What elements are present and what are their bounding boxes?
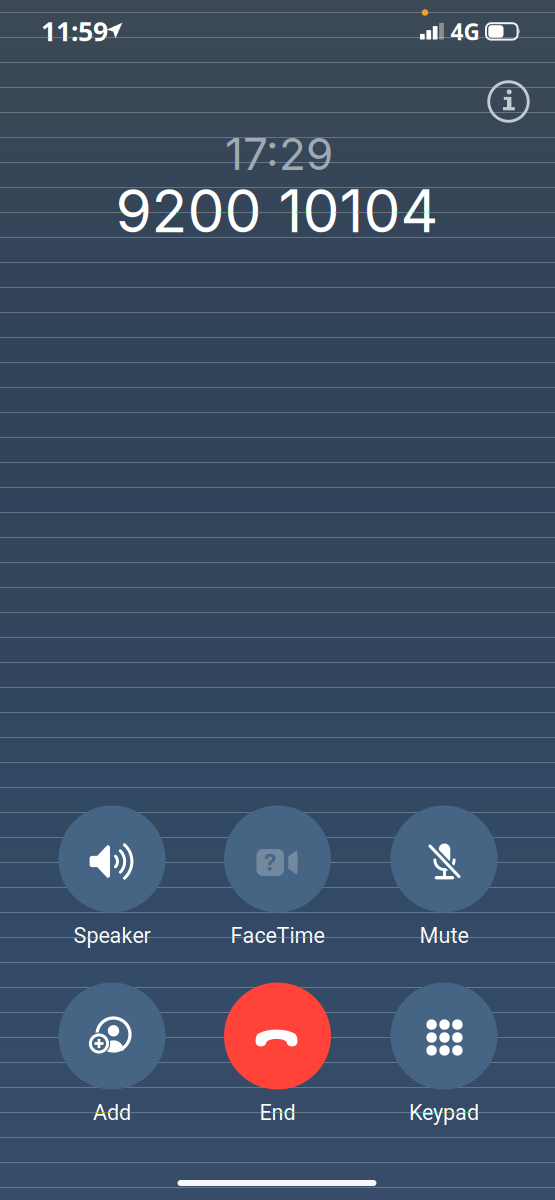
button[interactable]: Call info (481, 74, 535, 128)
staticText: Mute (419, 923, 468, 948)
button[interactable]: Speaker (29, 805, 195, 948)
staticText: Speaker (73, 923, 150, 948)
staticText: End (259, 1100, 295, 1125)
staticText: 17:29 (225, 127, 333, 181)
staticText: FaceTime (230, 923, 324, 948)
staticText: Keypad (409, 1100, 479, 1125)
staticText: Add (93, 1100, 131, 1125)
button[interactable]: End (194, 982, 360, 1125)
button[interactable]: Add (29, 982, 195, 1125)
staticText: ? (264, 849, 277, 876)
button[interactable]: Mute (361, 805, 527, 948)
staticText: 9200 10104 (115, 175, 438, 246)
button[interactable]: Keypad (361, 982, 527, 1125)
staticText: 11:59 (41, 13, 108, 49)
button[interactable]: ? (194, 805, 360, 948)
staticText: 4G (450, 16, 479, 46)
